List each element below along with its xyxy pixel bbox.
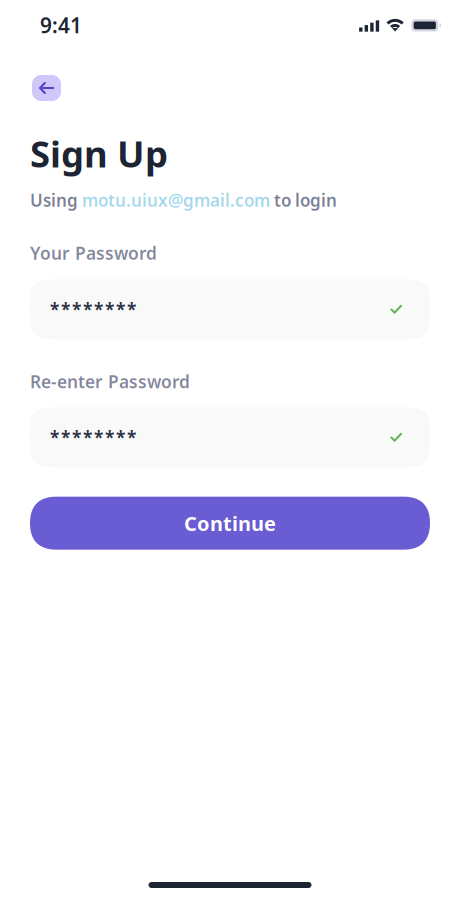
staticText: * [127,425,136,449]
staticText: * [50,297,59,321]
staticText: * [83,425,92,449]
staticText: * [105,297,114,321]
staticText: motu.uiux@gmail.com [82,189,270,212]
staticText: Continue [184,510,276,536]
staticText: * [61,297,70,321]
staticText: * [105,425,114,449]
staticText: * [116,297,125,321]
staticText: Using [30,189,82,212]
staticText: * [72,297,81,321]
staticText: * [94,425,103,449]
staticText: * [94,297,103,321]
button[interactable]: Continue [30,497,430,550]
staticText: Your Password [30,241,157,264]
staticText: * [72,425,81,449]
staticText: * [127,297,136,321]
staticText: * [61,425,70,449]
staticText: to login [270,189,337,212]
staticText: Re-enter Password [30,370,190,393]
staticText: * [83,297,92,321]
button[interactable]: Back [32,75,61,101]
button[interactable]: motu.uiux@gmail.com [82,189,270,212]
staticText: 9:41 [40,11,82,39]
staticText: Sign Up [30,128,168,178]
staticText: * [50,425,59,449]
staticText: * [116,425,125,449]
